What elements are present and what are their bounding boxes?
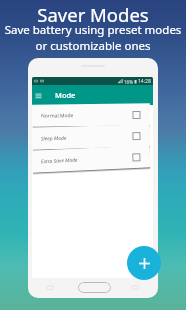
button[interactable]: Home (78, 282, 111, 293)
staticText: Save battery using preset modes or custo… (0, 22, 186, 53)
staticText: 14:28 (138, 78, 151, 85)
staticText: Extra Save Mode (41, 157, 78, 165)
staticText: Mode (55, 90, 76, 100)
button[interactable]: Sleep Mode (32, 124, 150, 153)
button[interactable]: Add mode (127, 246, 161, 280)
button[interactable]: Recents (47, 284, 54, 291)
staticText: Normal Mode (41, 112, 74, 120)
button[interactable]: Extra Save Mode (32, 145, 150, 176)
button[interactable]: Back (132, 284, 139, 291)
staticText: Sleep Mode (41, 135, 67, 142)
staticText: 16% (124, 79, 133, 85)
button[interactable]: Normal Mode (32, 103, 150, 130)
button[interactable]: Menu (33, 90, 44, 101)
staticText: Saver Modes (0, 2, 186, 27)
